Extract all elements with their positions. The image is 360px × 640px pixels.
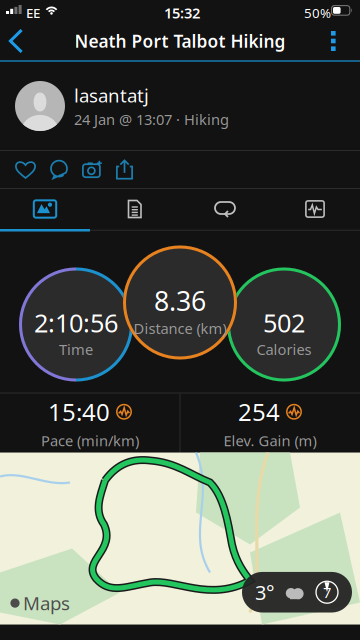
staticText: 7: [323, 582, 331, 602]
staticText: Neath Port Talbot Hiking: [74, 29, 285, 52]
staticText: 8.36: [154, 283, 206, 318]
staticText: 24 Jan @ 13:07 · Hiking: [74, 110, 229, 129]
button[interactable]: Details: [90, 189, 180, 229]
staticText: Elev. Gain (m): [223, 431, 316, 450]
button[interactable]: More options: [321, 22, 360, 60]
button[interactable]: Laps: [180, 189, 270, 229]
staticText: Pace (min/km): [41, 431, 139, 450]
staticText: Maps: [23, 591, 70, 615]
staticText: 15:32: [164, 3, 200, 22]
button[interactable]: Comment: [47, 153, 71, 186]
button[interactable]: Charts: [270, 189, 360, 229]
staticText: 502: [263, 306, 305, 339]
button[interactable]: Add photo: [80, 153, 105, 186]
staticText: Distance (km): [133, 318, 226, 338]
staticText: 2:10:56: [34, 306, 118, 339]
staticText: lasantatj: [74, 83, 149, 108]
staticText: 50%: [304, 4, 331, 22]
staticText: 15:40: [48, 396, 110, 428]
staticText: EE: [26, 4, 40, 22]
staticText: Calories: [256, 340, 311, 359]
button[interactable]: Back: [0, 22, 27, 60]
staticText: 3°: [255, 579, 275, 605]
button[interactable]: Share: [114, 152, 135, 186]
button[interactable]: Profile picture: [15, 81, 65, 131]
button[interactable]: Map: [0, 189, 90, 229]
staticText: 254: [238, 396, 280, 428]
staticText: Time: [59, 340, 93, 359]
button[interactable]: Like: [13, 153, 38, 186]
